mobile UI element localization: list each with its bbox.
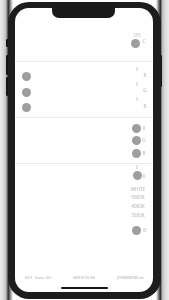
staticText: 3200K bbox=[127, 212, 149, 219]
staticText: C bbox=[140, 38, 148, 45]
staticText: K bbox=[140, 173, 148, 180]
button[interactable]: Master channel level, 255 bbox=[131, 39, 140, 48]
staticText: WHITE bbox=[127, 186, 149, 193]
staticText: 0 bbox=[127, 164, 147, 171]
button[interactable]: Volume down bbox=[6, 77, 9, 96]
staticText: MUTE Version 1.86.1 bbox=[25, 276, 52, 280]
button[interactable]: R channel slider bbox=[22, 72, 31, 81]
button[interactable]: Colour temperature bbox=[133, 171, 142, 180]
button[interactable]: B slider bbox=[132, 149, 141, 158]
staticText: 5600K bbox=[127, 194, 149, 201]
button[interactable]: G slider bbox=[132, 136, 141, 145]
staticText: G bbox=[140, 137, 148, 144]
staticText: R bbox=[140, 125, 148, 132]
staticText: G bbox=[141, 87, 149, 94]
button[interactable]: Mute switch bbox=[6, 39, 9, 47]
button[interactable]: Dimmer bbox=[132, 226, 141, 235]
button[interactable]: R slider bbox=[132, 124, 141, 133]
staticText: 255 bbox=[127, 32, 147, 39]
staticText: 0 bbox=[127, 96, 147, 103]
button[interactable]: G channel slider bbox=[22, 88, 31, 97]
staticText: MADE IN THE USA bbox=[73, 276, 96, 280]
button[interactable]: Power bbox=[159, 55, 162, 87]
staticText: B bbox=[140, 150, 148, 157]
button[interactable]: B channel slider bbox=[22, 103, 31, 112]
staticText: D bbox=[141, 227, 149, 234]
staticText: 0 bbox=[127, 81, 147, 88]
staticText: JOHNWAYARSTAR.com bbox=[117, 276, 144, 280]
staticText: B bbox=[141, 103, 149, 110]
button[interactable]: Home bbox=[61, 287, 108, 289]
staticText: 4000K bbox=[127, 203, 149, 210]
staticText: 0 bbox=[127, 66, 147, 73]
staticText: R bbox=[141, 72, 149, 79]
button[interactable]: Volume up bbox=[6, 55, 9, 75]
